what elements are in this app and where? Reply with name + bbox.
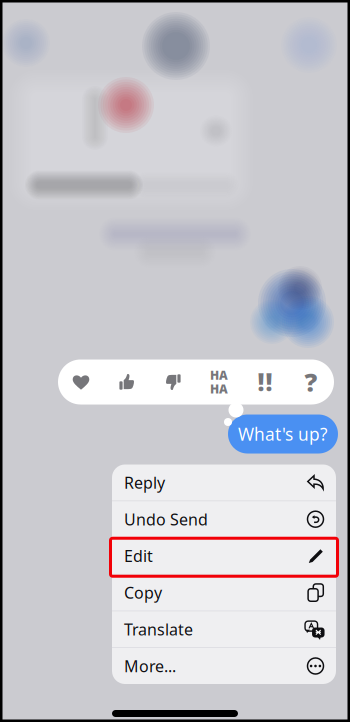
button[interactable]: Like xyxy=(104,359,150,404)
staticText: ? xyxy=(304,365,317,399)
button[interactable]: Edit xyxy=(112,538,336,574)
staticText: Copy xyxy=(124,582,162,603)
button[interactable]: Undo Send xyxy=(112,501,336,537)
staticText: More... xyxy=(124,655,176,677)
button[interactable]: Haha xyxy=(196,359,242,404)
button[interactable]: Emphasize xyxy=(242,359,288,404)
button[interactable]: Translate xyxy=(112,611,336,647)
staticText: HA xyxy=(210,367,228,383)
button[interactable]: Copy xyxy=(112,575,336,611)
staticText: Undo Send xyxy=(124,509,208,530)
staticText: Edit xyxy=(124,545,153,566)
button[interactable]: Dislike xyxy=(150,359,196,404)
staticText: ! xyxy=(257,366,264,398)
button[interactable]: Question xyxy=(288,359,334,404)
staticText: What's up? xyxy=(238,422,328,445)
staticText: Translate xyxy=(124,619,193,640)
staticText: ! xyxy=(265,366,272,398)
button[interactable]: Reply xyxy=(112,464,336,500)
button[interactable]: More... xyxy=(112,648,336,684)
staticText: HA xyxy=(210,381,228,397)
staticText: Reply xyxy=(124,472,165,493)
button[interactable]: Love xyxy=(58,359,104,404)
